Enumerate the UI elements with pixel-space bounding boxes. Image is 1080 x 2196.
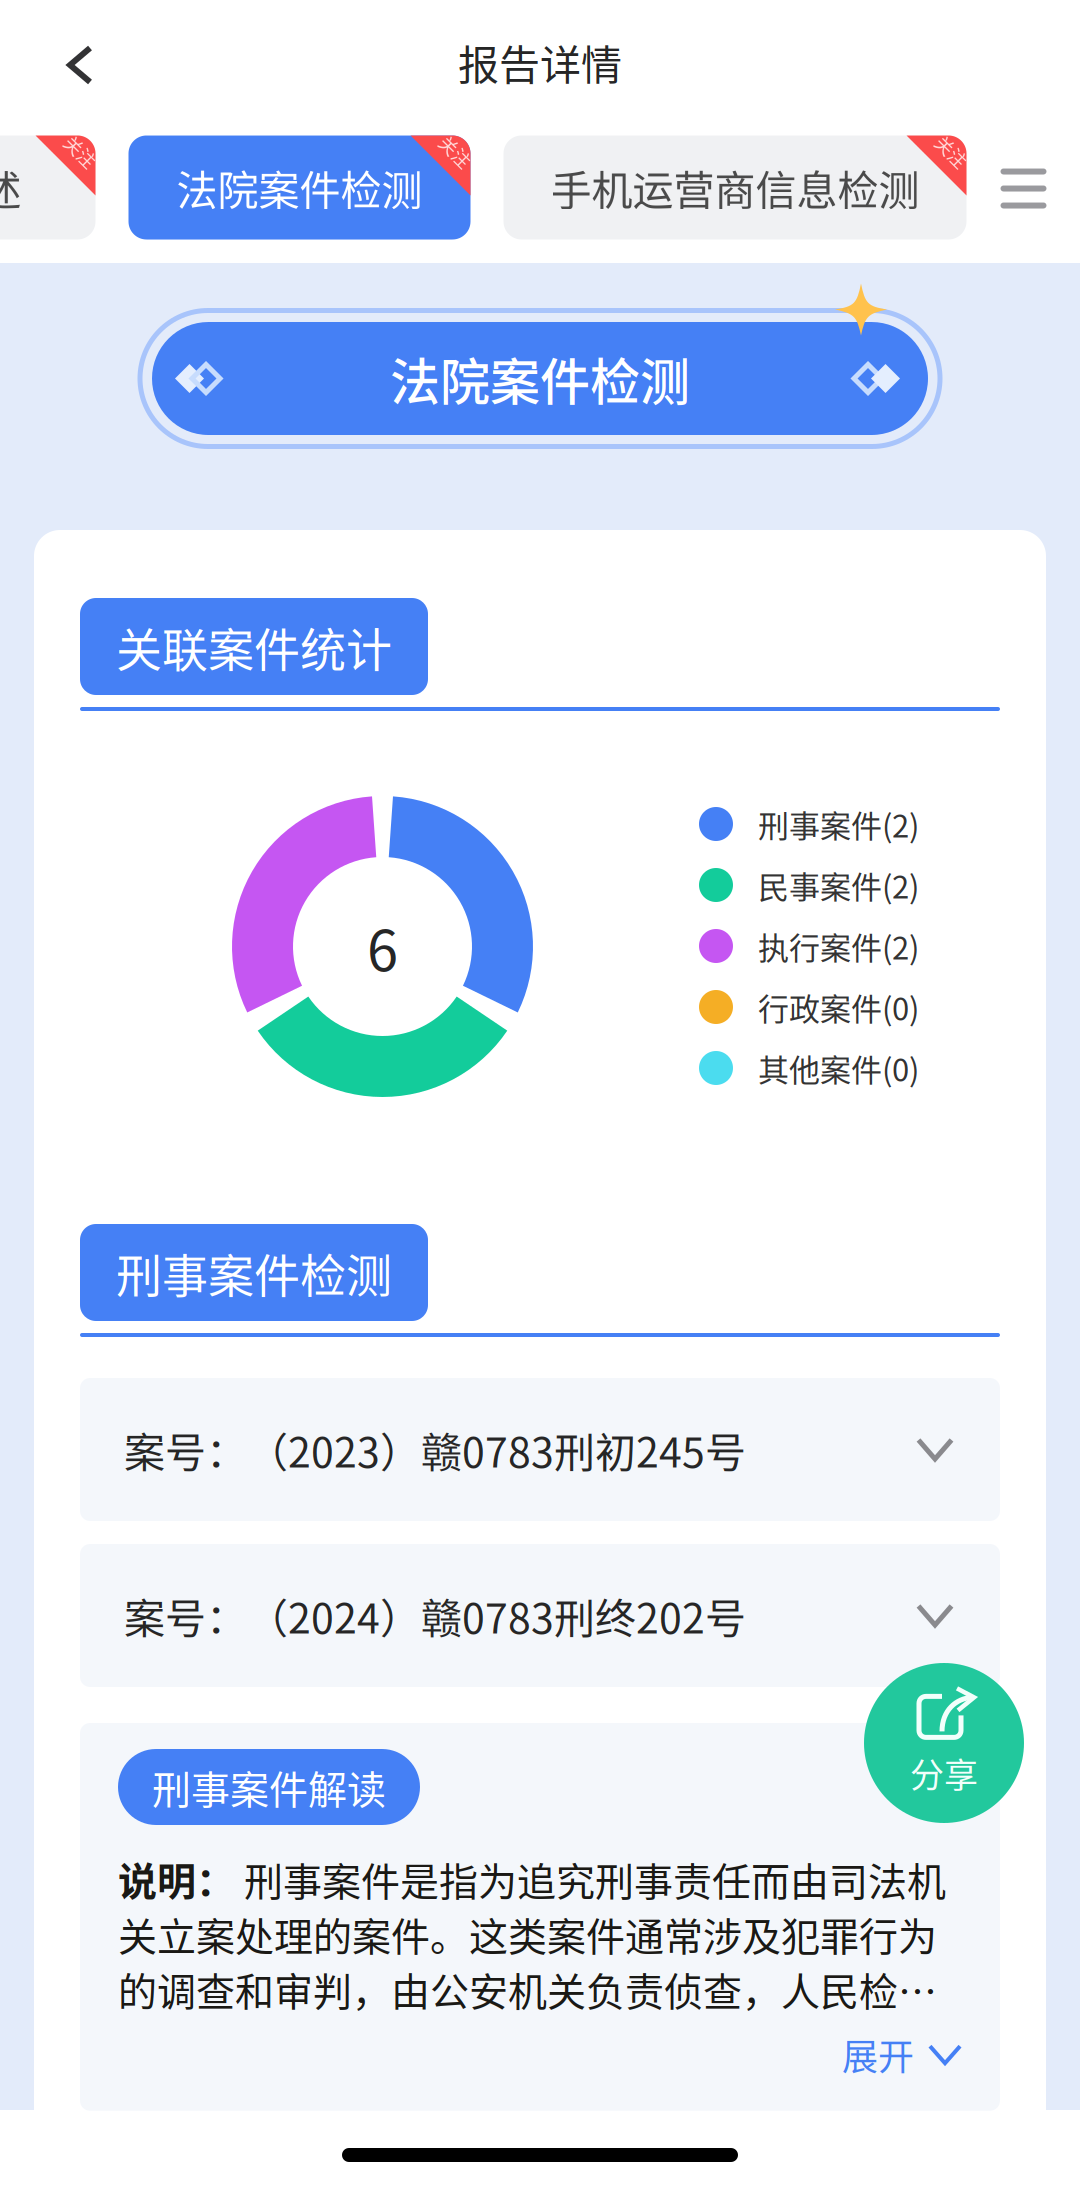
staticText: 关联案件统计	[116, 613, 392, 680]
button[interactable]: 分享	[864, 1663, 1024, 1823]
staticText: 报告详情	[458, 32, 622, 92]
staticText: 分享	[910, 1748, 978, 1798]
staticText: 概述	[0, 158, 21, 217]
staticText: 展开	[842, 2029, 914, 2081]
staticText: 说明： 刑事案件是指为追究刑事责任而由司法机关立案处理的案件。这类案件通常涉及犯…	[118, 1851, 962, 2017]
staticText: 手机运营商信息检测	[550, 158, 919, 217]
staticText: 关注	[62, 138, 98, 165]
staticText: 6	[367, 906, 398, 987]
staticText: 刑事案件(2)	[758, 802, 919, 846]
staticText: 法院案件检测	[176, 158, 422, 217]
staticText: 行政案件(0)	[758, 985, 919, 1029]
staticText: 民事案件(2)	[758, 863, 919, 907]
button[interactable]: 案号：（2023）赣0783刑初245号	[80, 1378, 1000, 1521]
button[interactable]: 案号：（2024）赣0783刑终202号	[80, 1544, 1000, 1687]
staticText: 执行案件(2)	[758, 924, 919, 968]
button[interactable]: 展开	[842, 2029, 962, 2081]
staticText: 关注	[933, 138, 969, 165]
staticText: 刑事案件检测	[116, 1239, 392, 1306]
button[interactable]: 菜单	[979, 136, 1067, 241]
button[interactable]: 返回	[34, 19, 126, 111]
staticText: 其他案件(0)	[758, 1046, 919, 1090]
button[interactable]: 概述	[0, 135, 95, 239]
staticText: 案号：（2024）赣0783刑终202号	[124, 1586, 746, 1645]
button[interactable]: 法院案件检测	[128, 135, 470, 239]
staticText: 关注	[437, 138, 473, 165]
staticText: 案号：（2023）赣0783刑初245号	[124, 1420, 746, 1479]
staticText: 刑事案件解读	[152, 1759, 386, 1815]
button[interactable]: 手机运营商信息检测	[503, 135, 966, 239]
staticText: 法院案件检测	[390, 342, 690, 415]
